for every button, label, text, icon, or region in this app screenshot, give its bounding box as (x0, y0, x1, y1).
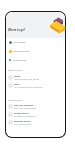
button[interactable]: Your location (7, 39, 64, 45)
button[interactable]: Business Center (7, 118, 64, 126)
staticText: Select on map (13, 59, 27, 62)
staticText: 32 Coveted Washington Av (14, 115, 37, 117)
staticText: Work (14, 83, 20, 86)
staticText: Federal street (14, 112, 29, 115)
staticText: 1011 Miami Lovely Rd, Manhattan (14, 86, 43, 88)
button[interactable]: Home (7, 73, 64, 81)
button[interactable]: City Park Museum (7, 102, 64, 110)
staticText: Airport Terminal 2 (13, 50, 30, 53)
staticText: Recent Searches (8, 99, 23, 102)
staticText: Abc Main Depot Lane, Boston (14, 78, 39, 80)
other: Taxi illustration (47, 15, 67, 36)
staticText: Your location (13, 41, 26, 44)
staticText: Where to go? (8, 28, 25, 32)
button[interactable]: Airport Terminal 2 (7, 48, 64, 54)
staticText: 150 W Brooklyn Blvd (14, 123, 32, 125)
staticText: Business Center (14, 120, 31, 123)
button[interactable]: Select on map (7, 57, 64, 63)
staticText: Home (14, 75, 21, 78)
staticText: 4601 Park Ave, Jamestown (14, 107, 37, 109)
button[interactable]: Federal street (7, 110, 64, 118)
staticText: Recent Locations (8, 69, 24, 72)
staticText: City Park Museum (14, 104, 33, 107)
button[interactable]: Work (7, 81, 64, 89)
